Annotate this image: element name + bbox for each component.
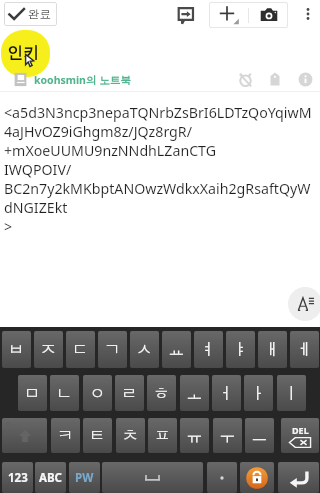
button[interactable]: ㄹ [115,375,144,411]
button[interactable]: 완료 [4,2,57,26]
staticText: 123 [8,470,28,486]
staticText: ㅊ [122,425,139,446]
button[interactable]: ㅅ [130,331,159,368]
staticText: ABC [39,470,62,486]
button[interactable]: Add attachment [209,2,248,28]
staticText: ㅐ [264,339,281,360]
button[interactable]: ㅍ [148,418,177,453]
button[interactable]: ㅑ [226,331,255,368]
button[interactable]: Secure keyboard [240,462,274,493]
staticText: ㅠ [186,425,203,446]
button[interactable]: ㅛ [162,331,191,368]
staticText: ㅔ [296,339,313,360]
button[interactable]: ㅁ [18,375,47,411]
staticText: IWQPOIV/ [4,160,72,179]
button[interactable]: ㄴ [50,375,79,411]
button[interactable]: Note info [292,68,318,90]
staticText: ㄱ [104,339,121,360]
staticText: ㅑ [232,339,249,360]
button[interactable]: Space [102,462,203,493]
button[interactable]: ㅗ [180,375,209,411]
staticText: ㅜ [219,425,236,446]
button[interactable]: Reminder [232,68,258,90]
button[interactable]: Delete [281,418,319,453]
staticText: ㅋ [57,425,74,446]
staticText: ㅡ [251,425,268,446]
staticText: ㅛ [168,339,185,360]
staticText: ㅅ [136,339,153,360]
button[interactable]: Shift [2,418,47,453]
button[interactable]: Share to chat [172,2,198,28]
staticText: ㅕ [200,339,217,360]
staticText: ㅈ [40,339,57,360]
button[interactable]: ㅂ [2,331,31,368]
staticText: ㅣ [283,383,300,404]
button[interactable]: ㅎ [147,375,176,411]
staticText: ㄴ [56,383,73,404]
button[interactable]: ㅇ [83,375,112,411]
staticText: > [4,217,13,236]
staticText: ㅗ [186,383,203,404]
button[interactable]: Tag [262,68,288,90]
button[interactable]: 123 [2,462,33,493]
button[interactable]: Enter [278,462,319,493]
staticText: ㅎ [153,383,170,404]
staticText: koohsmin의 노트북 [34,73,131,87]
button[interactable]: ㅓ [212,375,241,411]
staticText: BC2n7y2kMKbptANOwzWdkxXaih2gRsaftQyW [4,179,311,198]
staticText: ㅁ [24,383,41,404]
staticText: ㅓ [218,383,235,404]
button[interactable]: ㅐ [258,331,287,368]
staticText: ㄷ [72,339,89,360]
button[interactable]: ㅔ [290,331,319,368]
button[interactable]: ㅕ [194,331,223,368]
button[interactable]: ㅌ [83,418,112,453]
button[interactable]: ㄷ [66,331,95,368]
staticText: ㅌ [89,425,106,446]
staticText: dNGIZEkt [4,198,68,217]
staticText: <a5d3N3ncp3nepaTQNrbZsBrI6LDTzQoYqiwM [4,103,312,122]
staticText: PW [75,470,94,486]
button[interactable]: ㅜ [213,418,242,453]
button[interactable]: Text formatting [288,287,320,321]
button[interactable]: ㅠ [180,418,209,453]
staticText: ㅏ [250,383,267,404]
staticText: ㄹ [121,383,138,404]
button[interactable]: ㅡ [245,418,274,453]
staticText: 4aJHvOZ9iGhgm8z/JQz8rgR/ [4,122,192,141]
staticText: 완료 [28,7,51,21]
button[interactable]: PW [69,462,100,493]
button[interactable]: ㅈ [34,331,63,368]
button[interactable]: ABC [35,462,66,493]
button[interactable]: More options [296,2,320,26]
button[interactable]: koohsmin의 노트북 [14,72,131,87]
button[interactable]: ㅣ [277,375,306,411]
staticText: ㅇ [89,383,106,404]
button[interactable]: ㅊ [116,418,145,453]
staticText: 인키 [7,43,39,63]
staticText: ㅂ [8,339,25,360]
button[interactable]: ㅏ [244,375,273,411]
button[interactable]: ㅋ [51,418,80,453]
button[interactable]: Period [207,462,237,493]
button[interactable]: ㄱ [98,331,127,368]
button[interactable]: Camera [249,2,288,28]
staticText: +mXoeUUMU9nzNNdhLZanCTG [4,141,217,160]
staticText: DEL [292,424,309,436]
staticText: ㅍ [154,425,171,446]
